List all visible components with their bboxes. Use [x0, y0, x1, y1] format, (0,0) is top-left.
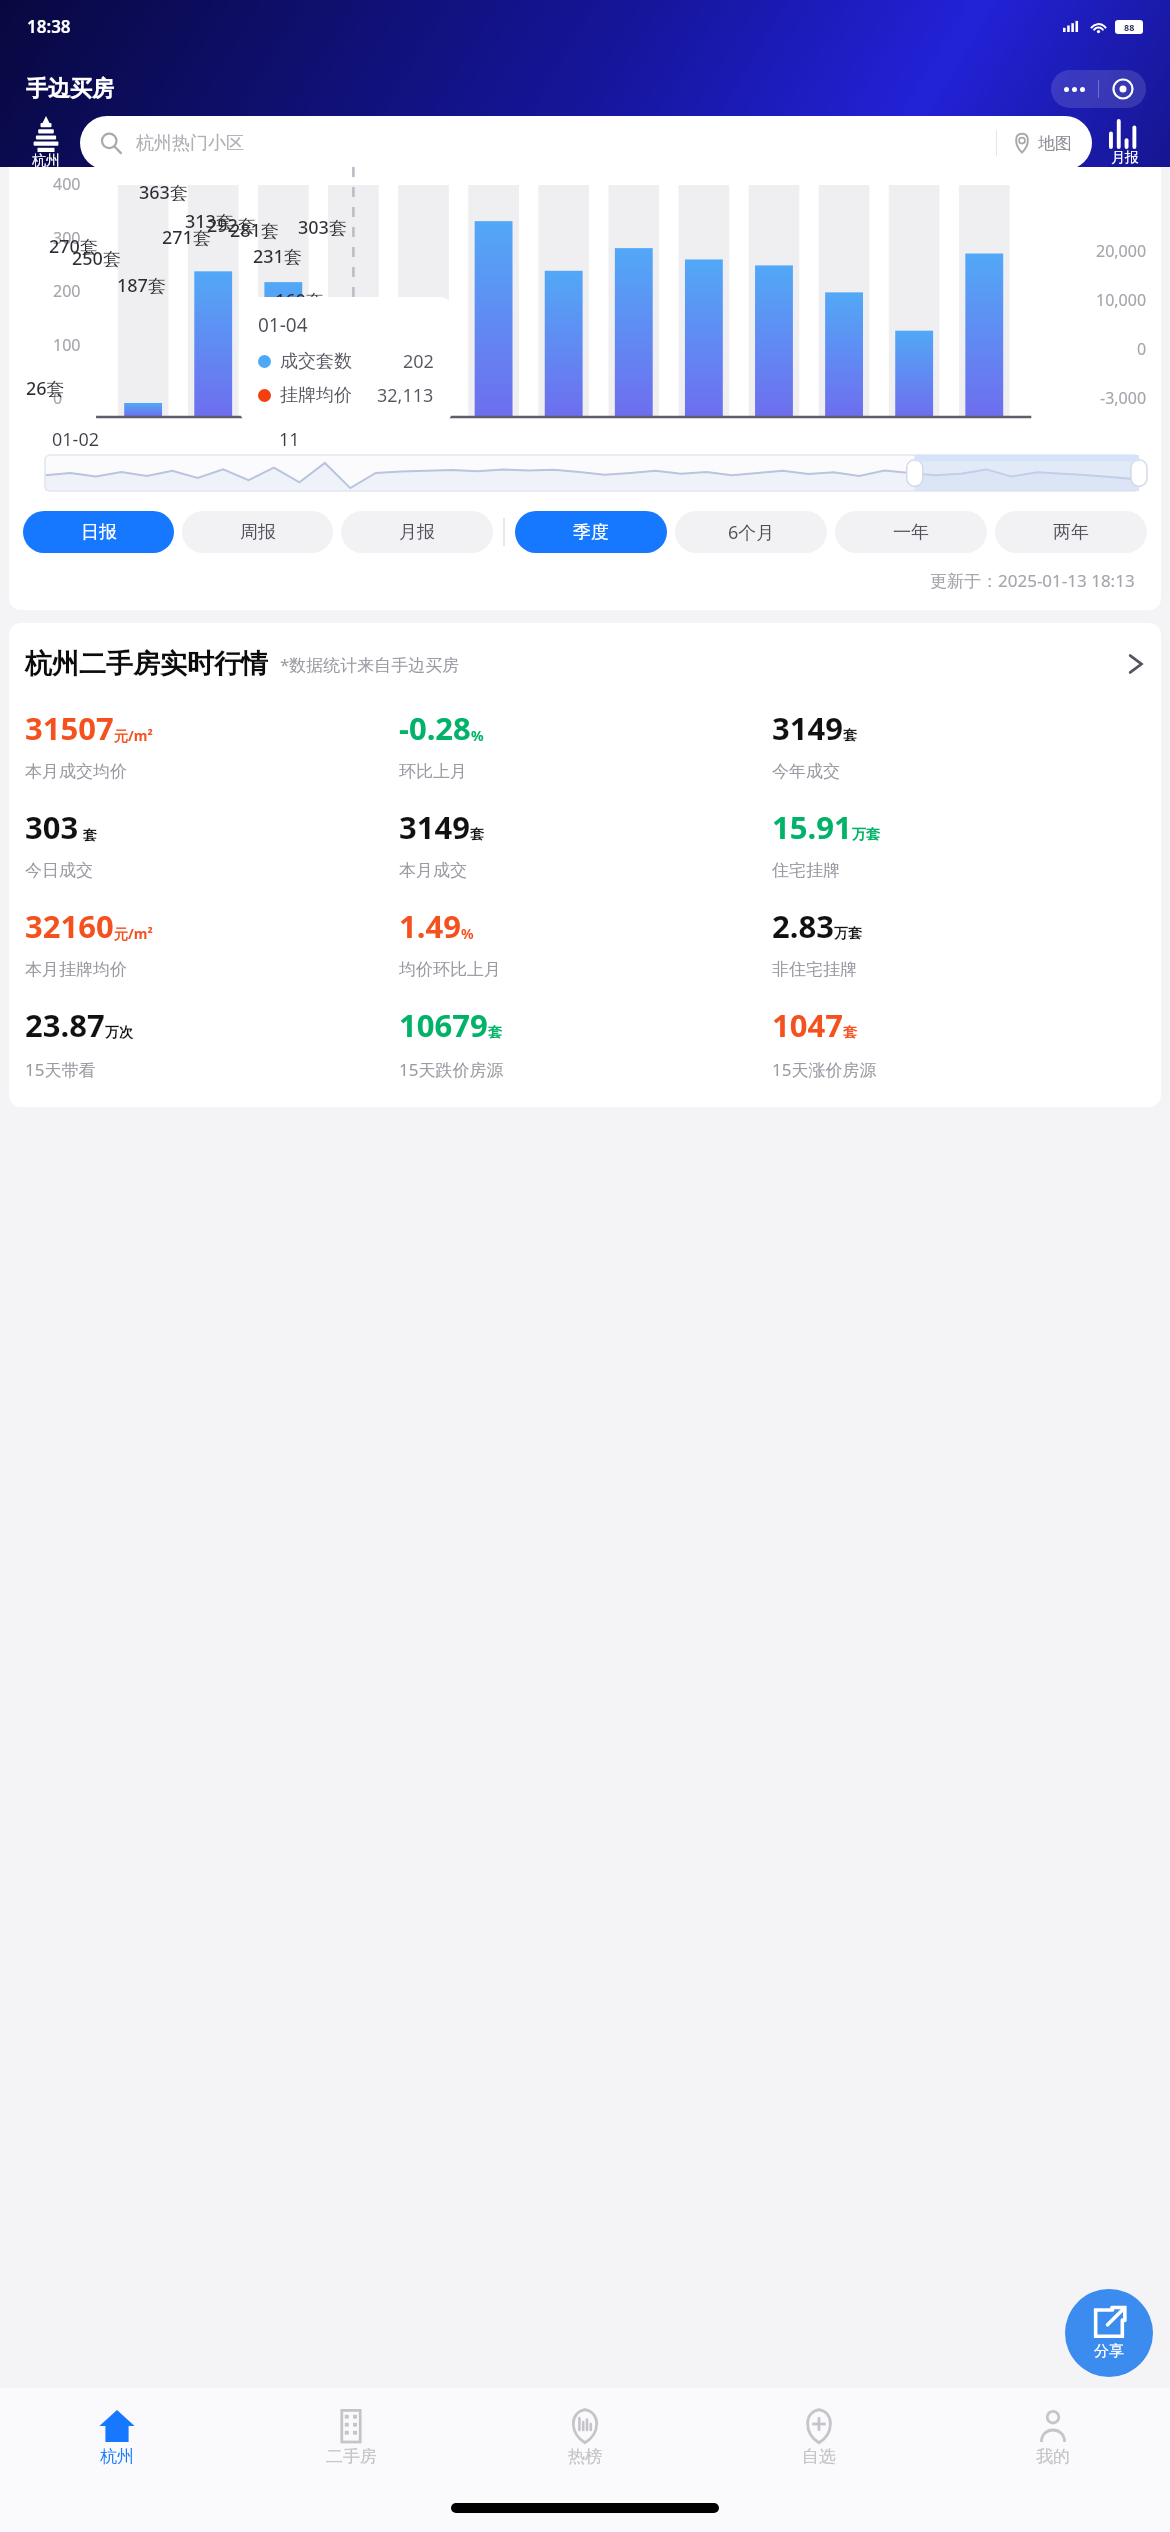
- staticText: 0: [1137, 338, 1147, 360]
- button[interactable]: 杭州: [12, 116, 80, 170]
- staticText: 我的: [1036, 2446, 1070, 2467]
- button[interactable]: 303: [25, 806, 399, 881]
- staticText: 15天带看: [25, 1058, 96, 1081]
- staticText: 一年: [893, 521, 929, 544]
- button[interactable]: 2.83: [772, 905, 1145, 980]
- staticText: 88: [1124, 21, 1135, 33]
- staticText: 01-04: [258, 312, 308, 338]
- staticText: 6个月: [728, 520, 775, 545]
- staticText: 本月成交均价: [25, 761, 127, 782]
- button[interactable]: 杭州: [0, 2388, 234, 2484]
- staticText: 非住宅挂牌: [772, 959, 857, 980]
- staticText: 手边买房: [26, 75, 114, 103]
- button[interactable]: 上海: [341, 177, 504, 231]
- staticText: 15天涨价房源: [772, 1058, 877, 1081]
- staticText: 303: [25, 806, 79, 848]
- staticText: 本月挂牌均价: [25, 959, 127, 980]
- button[interactable]: 我的: [936, 2388, 1170, 2484]
- staticText: 187套: [117, 273, 166, 298]
- staticText: 11: [279, 427, 300, 452]
- staticText: 月报: [399, 521, 435, 544]
- staticText: 303套: [298, 215, 347, 240]
- button[interactable]: 23.87: [25, 1004, 399, 1081]
- button[interactable]: 31507: [25, 707, 399, 782]
- staticText: 100: [53, 334, 81, 356]
- staticText: 套: [488, 1024, 502, 1042]
- staticText: 周报: [240, 521, 276, 544]
- staticText: 292套: [207, 213, 256, 238]
- staticText: 万套: [834, 925, 862, 943]
- staticText: 160套: [275, 288, 324, 313]
- staticText: 250套: [72, 246, 121, 271]
- button[interactable]: 日报: [23, 511, 174, 553]
- staticText: 10,000: [1096, 289, 1147, 311]
- staticText: 成交套数: [280, 350, 352, 373]
- staticText: -3,000: [1100, 387, 1147, 409]
- button[interactable]: 杭州: [14, 177, 178, 231]
- button[interactable]: 热榜: [468, 2388, 702, 2484]
- button[interactable]: 3149: [399, 806, 772, 881]
- staticText: 32160: [25, 905, 114, 947]
- staticText: 3149: [772, 707, 843, 749]
- button[interactable]: 季度: [515, 511, 667, 553]
- button[interactable]: More options: [1051, 70, 1098, 108]
- button[interactable]: 自选: [702, 2388, 936, 2484]
- staticText: 400: [53, 173, 81, 195]
- button[interactable]: 1.49: [399, 905, 772, 980]
- staticText: 20,000: [1096, 240, 1147, 262]
- staticText: %: [471, 726, 484, 745]
- button[interactable]: 南京: [667, 177, 830, 231]
- button[interactable]: 32160: [25, 905, 399, 980]
- staticText: 挂牌均价: [280, 384, 352, 407]
- staticText: 31507: [25, 707, 114, 749]
- staticText: 18:38: [27, 15, 71, 38]
- staticText: 15.91: [772, 806, 852, 848]
- staticText: 今年成交: [772, 761, 840, 782]
- staticText: 271套: [162, 225, 211, 250]
- staticText: 202: [403, 349, 434, 374]
- staticText: 热榜: [568, 2446, 602, 2467]
- button[interactable]: 分享 Share: [1065, 2289, 1153, 2377]
- button[interactable]: 杭州热门小区: [80, 116, 1092, 170]
- staticText: 杭州热门小区: [136, 132, 244, 155]
- staticText: 200: [53, 280, 81, 302]
- staticText: 1047: [772, 1004, 843, 1046]
- staticText: 套: [843, 1024, 857, 1042]
- staticText: 231套: [253, 244, 302, 269]
- button[interactable]: 一年: [835, 511, 987, 553]
- button[interactable]: 15.91: [772, 806, 1145, 881]
- button[interactable]: 北京: [178, 177, 341, 231]
- staticText: 2.83: [772, 905, 834, 947]
- staticText: 270套: [49, 234, 98, 259]
- staticText: 今日成交: [25, 860, 93, 881]
- button[interactable]: 成都: [993, 177, 1156, 231]
- staticText: 环比上月: [399, 761, 467, 782]
- button[interactable]: Close: [1099, 70, 1146, 108]
- button[interactable]: 二手房: [234, 2388, 468, 2484]
- staticText: 深圳: [566, 192, 606, 217]
- staticText: 套: [470, 826, 484, 844]
- button[interactable]: 苏州: [830, 177, 993, 231]
- staticText: 二手房: [326, 2446, 377, 2467]
- staticText: 300: [53, 227, 81, 249]
- button[interactable]: 6个月: [675, 511, 827, 553]
- staticText: 0: [53, 387, 63, 409]
- button[interactable]: 10679: [399, 1004, 772, 1081]
- staticText: 套: [843, 727, 857, 745]
- button[interactable]: 杭州二手房实时行情: [25, 647, 1145, 681]
- staticText: 套: [79, 825, 97, 844]
- button[interactable]: 3149: [772, 707, 1145, 782]
- button[interactable]: 两年: [995, 511, 1147, 553]
- staticText: 10679: [399, 1004, 488, 1046]
- button[interactable]: 深圳: [504, 177, 667, 231]
- button[interactable]: 月报: [341, 511, 493, 553]
- button[interactable]: 月报: [1092, 119, 1158, 167]
- button[interactable]: -0.28: [399, 707, 772, 782]
- button[interactable]: 周报: [182, 511, 333, 553]
- staticText: 363套: [139, 180, 188, 205]
- staticText: 元/m²: [114, 924, 153, 943]
- staticText: 32,113: [377, 383, 434, 408]
- button[interactable]: 1047: [772, 1004, 1145, 1081]
